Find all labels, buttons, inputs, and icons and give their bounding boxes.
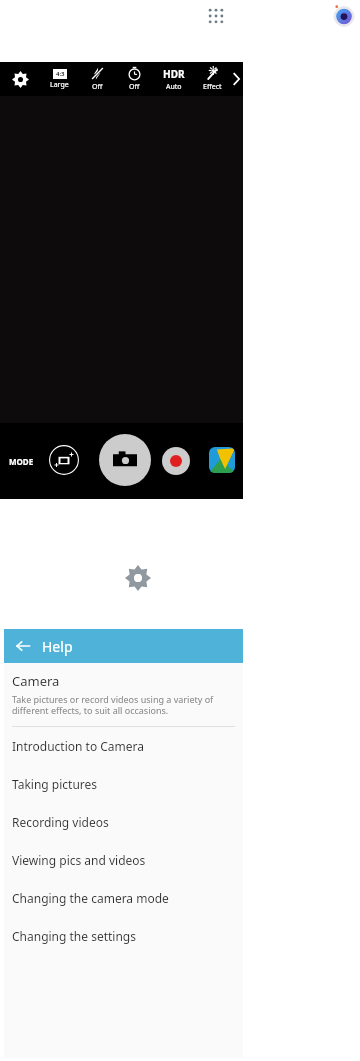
button[interactable]: More: [230, 62, 243, 96]
button[interactable]: Record video: [162, 447, 190, 475]
staticText: Introduction to Camera: [12, 738, 145, 754]
button[interactable]: Camera: [331, 3, 357, 29]
button[interactable]: Off: [116, 62, 153, 96]
button[interactable]: 4:3: [40, 62, 79, 96]
staticText: Effect: [203, 82, 222, 92]
staticText: HDR: [163, 67, 185, 81]
button[interactable]: Changing the settings: [12, 917, 235, 955]
button[interactable]: Effect: [194, 62, 230, 96]
staticText: 4:3: [56, 70, 65, 78]
staticText: Large: [50, 80, 69, 90]
staticText: Auto: [166, 82, 182, 92]
staticText: Camera: [12, 672, 60, 690]
staticText: Help: [42, 637, 73, 656]
staticText: Take pictures or record videos using a v…: [12, 693, 214, 717]
button[interactable]: Shutter: [99, 434, 151, 486]
button[interactable]: HDR: [153, 62, 194, 96]
button[interactable]: Taking pictures: [12, 765, 235, 803]
button[interactable]: Recording videos: [12, 803, 235, 841]
staticText: Changing the settings: [12, 928, 136, 944]
button[interactable]: Mode: [49, 445, 79, 475]
button[interactable]: Introduction to Camera: [12, 727, 235, 765]
staticText: Changing the camera mode: [12, 890, 169, 906]
staticText: Taking pictures: [12, 776, 98, 792]
button[interactable]: Gallery: [209, 447, 235, 473]
button[interactable]: Camera: [12, 672, 235, 717]
button[interactable]: Apps: [202, 2, 230, 30]
button[interactable]: Settings: [0, 62, 40, 96]
staticText: Recording videos: [12, 814, 109, 830]
staticText: MODE: [9, 456, 34, 467]
button[interactable]: Off: [79, 62, 116, 96]
button[interactable]: Changing the camera mode: [12, 879, 235, 917]
staticText: Off: [92, 82, 103, 92]
staticText: Off: [129, 82, 140, 92]
staticText: Viewing pics and videos: [12, 852, 146, 868]
button[interactable]: Back: [4, 629, 42, 663]
button[interactable]: Settings: [124, 564, 152, 592]
button[interactable]: Viewing pics and videos: [12, 841, 235, 879]
